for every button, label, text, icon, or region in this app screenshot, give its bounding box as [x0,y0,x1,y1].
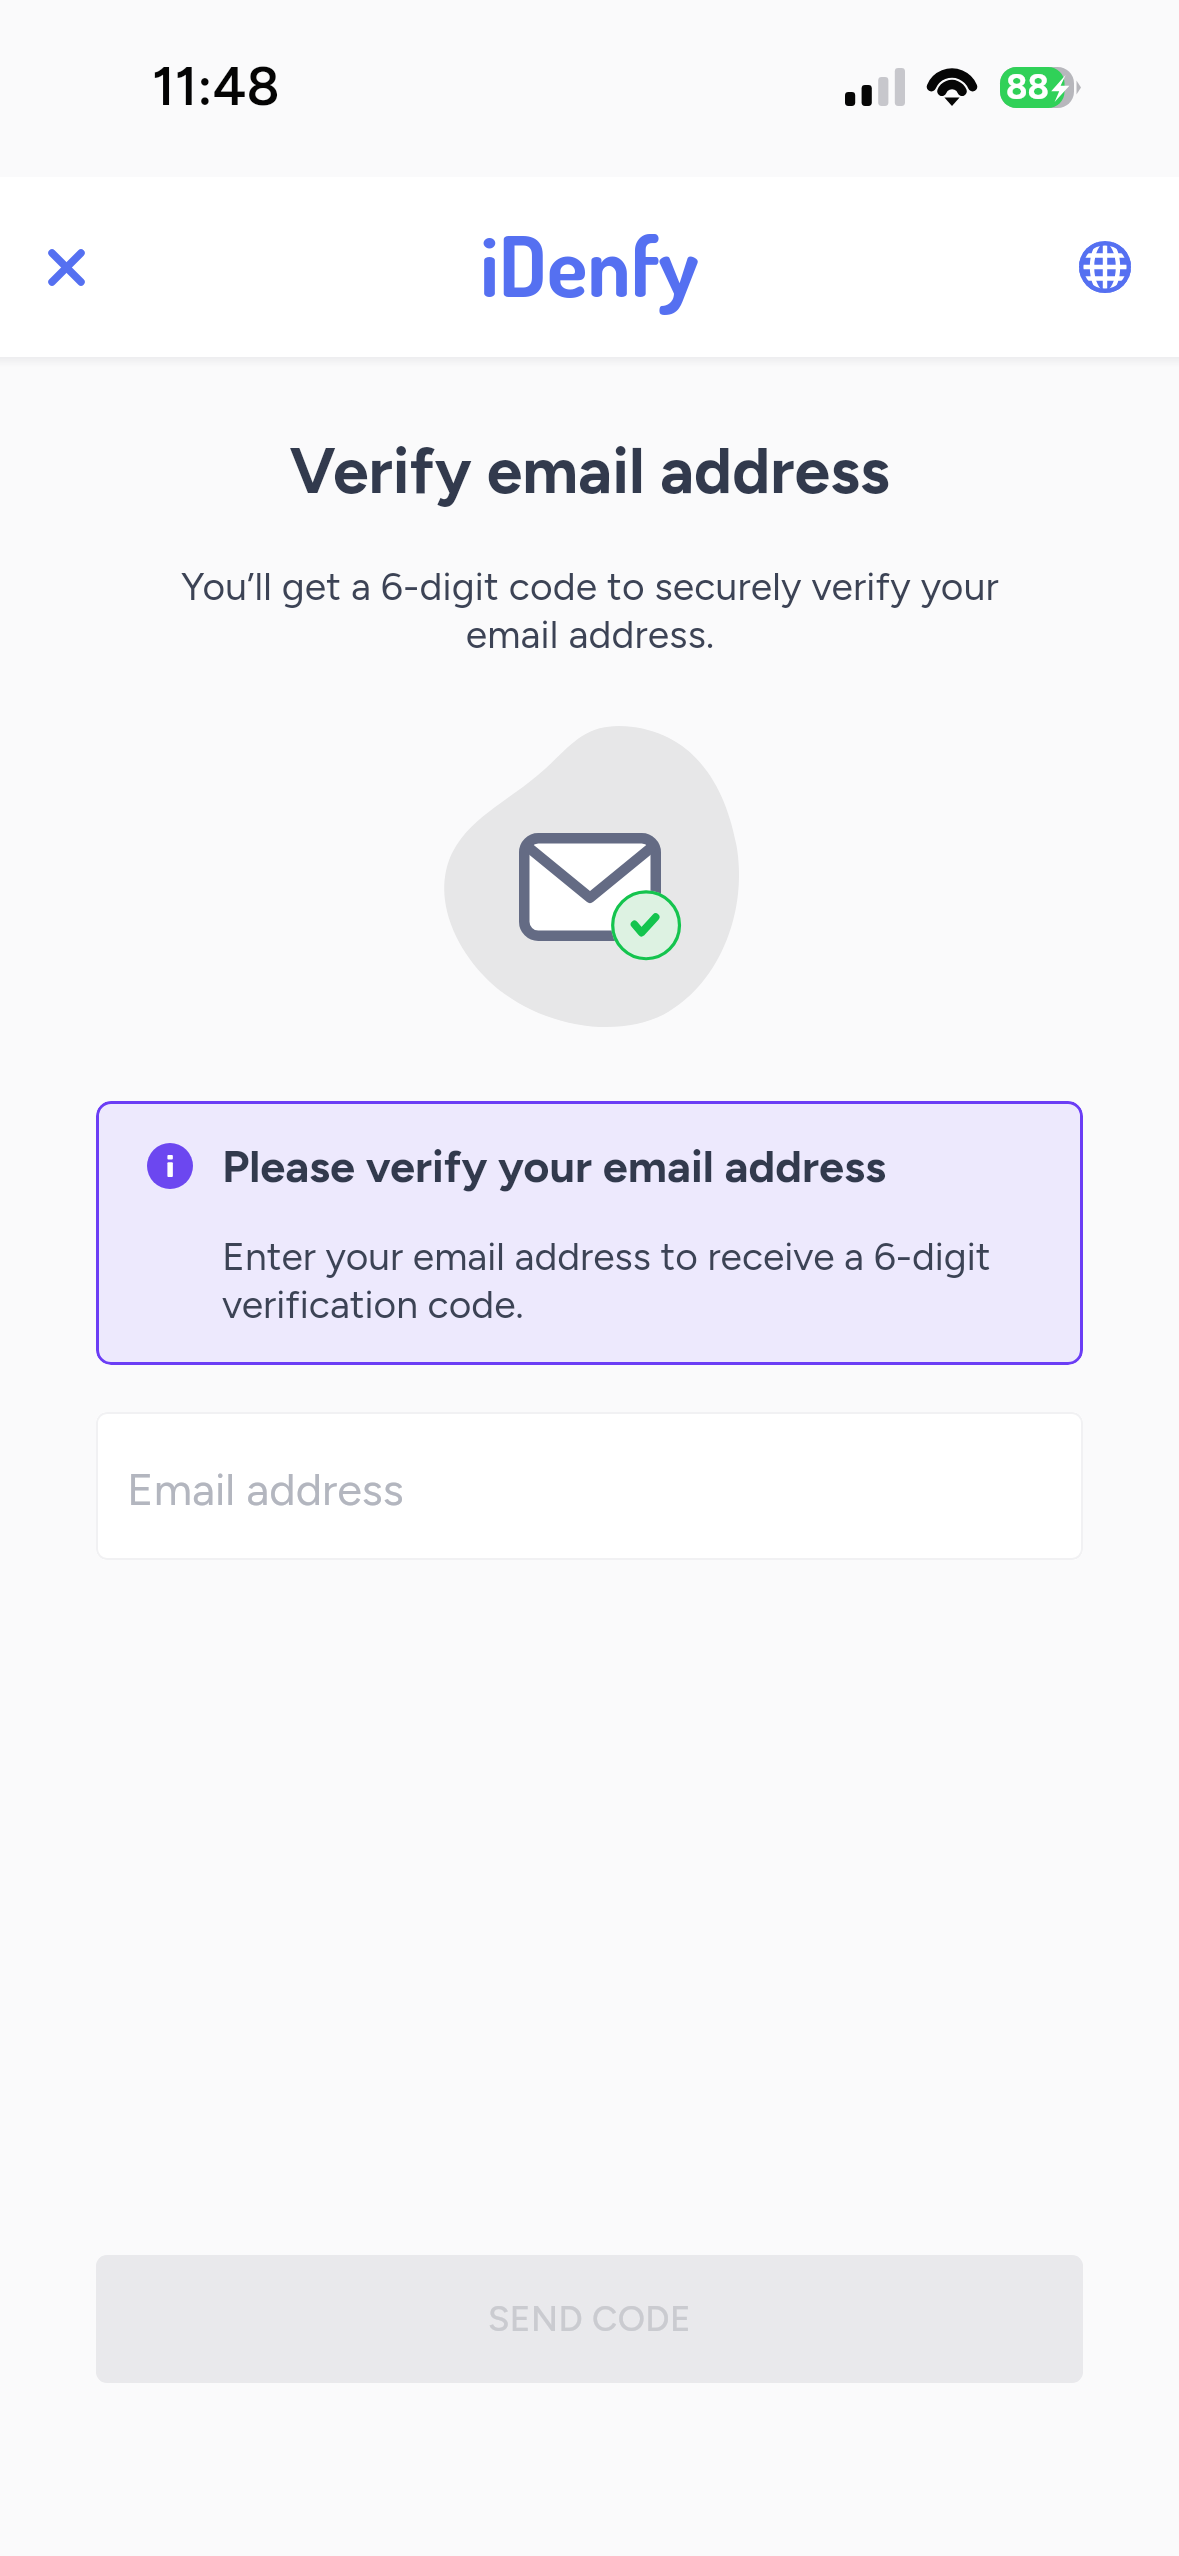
staticText: Email address [127,1462,404,1516]
staticText: You’ll get a 6-digit code to securely ve… [160,563,1020,658]
staticText: Enter your email address to receive a 6-… [222,1233,1035,1328]
button[interactable]: Email address [96,1412,1083,1560]
button[interactable]: Please verify your email address [96,1101,1083,1365]
staticText: SEND CODE [488,2298,691,2340]
staticText: 11:48 [152,54,280,119]
button[interactable]: Change language [1059,221,1151,313]
button[interactable]: Close [20,221,112,313]
button[interactable]: SEND CODE [96,2255,1083,2383]
staticText: Please verify your email address [222,1139,886,1193]
staticText: Verify email address [289,432,890,509]
staticText: iDenfy [480,212,699,317]
staticText: 88 [1006,66,1049,108]
